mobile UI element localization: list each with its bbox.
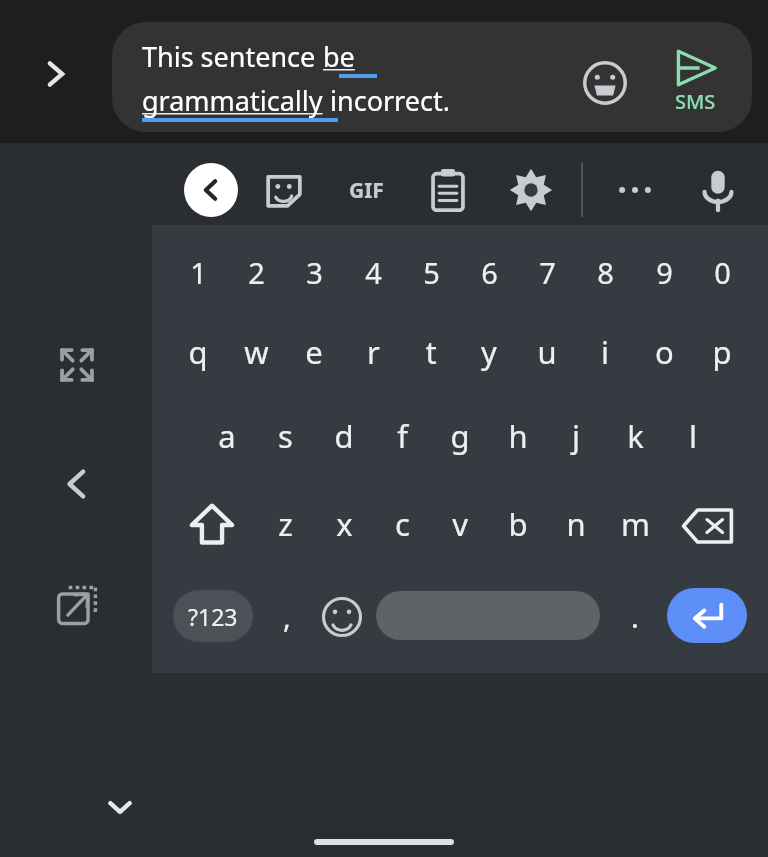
button[interactable]: Emoji xyxy=(582,60,628,106)
button[interactable]: 6 xyxy=(460,244,518,300)
button[interactable]: w xyxy=(227,324,285,380)
button[interactable]: More options xyxy=(612,170,658,210)
button[interactable]: j xyxy=(547,408,605,464)
button[interactable]: d xyxy=(315,408,373,464)
staticText: 3 xyxy=(306,253,323,292)
button[interactable]: y xyxy=(460,324,518,380)
staticText: 1 xyxy=(190,253,207,292)
staticText: SMS xyxy=(675,88,716,115)
staticText: 5 xyxy=(423,253,440,292)
button[interactable]: x xyxy=(315,496,373,552)
button[interactable]: i xyxy=(576,324,634,380)
button[interactable]: Close toolbar xyxy=(184,163,238,217)
button[interactable]: Emoji keyboard xyxy=(321,596,363,638)
button[interactable]: Next suggestion xyxy=(34,52,78,96)
staticText: h xyxy=(508,415,528,457)
staticText: 9 xyxy=(656,253,673,292)
staticText: 7 xyxy=(539,253,556,292)
staticText: i xyxy=(601,331,609,373)
staticText: ?123 xyxy=(188,601,238,632)
button[interactable]: b xyxy=(489,496,547,552)
button[interactable]: a xyxy=(198,408,256,464)
staticText: . xyxy=(631,597,639,636)
button[interactable]: u xyxy=(518,324,576,380)
button[interactable]: Back xyxy=(55,462,99,506)
staticText: b xyxy=(508,503,528,545)
button[interactable]: k xyxy=(606,408,664,464)
staticText: t xyxy=(425,331,437,373)
button[interactable]: , xyxy=(258,588,316,644)
staticText: m xyxy=(621,503,650,545)
button[interactable]: r xyxy=(344,324,402,380)
button[interactable]: Shift xyxy=(188,502,236,548)
button[interactable]: . xyxy=(606,588,664,644)
button[interactable]: ?123 xyxy=(173,590,253,642)
button[interactable]: 2 xyxy=(227,244,285,300)
staticText: c xyxy=(395,503,410,545)
button[interactable]: h xyxy=(489,408,547,464)
staticText: 4 xyxy=(365,253,382,292)
button[interactable]: GIF xyxy=(338,168,394,212)
button[interactable]: s xyxy=(256,408,314,464)
staticText: , xyxy=(283,597,291,636)
staticText: j xyxy=(572,415,580,457)
button[interactable]: 5 xyxy=(402,244,460,300)
button[interactable]: n xyxy=(547,496,605,552)
staticText: 8 xyxy=(597,253,614,292)
button[interactable]: Hide keyboard xyxy=(98,792,142,824)
button[interactable]: Voice input xyxy=(697,166,739,214)
staticText: 6 xyxy=(481,253,498,292)
button[interactable]: z xyxy=(256,496,314,552)
staticText: o xyxy=(655,331,674,373)
button[interactable]: 3 xyxy=(285,244,343,300)
button[interactable]: q xyxy=(169,324,227,380)
staticText: x xyxy=(336,503,353,545)
staticText: 0 xyxy=(714,253,731,292)
button[interactable]: v xyxy=(431,496,489,552)
staticText: z xyxy=(278,503,293,545)
staticText: f xyxy=(397,415,408,457)
staticText: s xyxy=(278,415,293,457)
staticText: GIF xyxy=(349,176,384,205)
button[interactable]: t xyxy=(402,324,460,380)
button[interactable]: 8 xyxy=(576,244,634,300)
button[interactable]: Backspace xyxy=(682,506,734,546)
staticText: l xyxy=(689,415,697,457)
staticText: grammatically xyxy=(142,82,323,119)
button[interactable]: Open in new window xyxy=(54,582,100,628)
button[interactable]: p xyxy=(693,324,751,380)
button[interactable]: l xyxy=(664,408,722,464)
button[interactable]: 9 xyxy=(635,244,693,300)
button[interactable]: Clipboard xyxy=(426,166,470,214)
button[interactable]: o xyxy=(635,324,693,380)
staticText: incorrect. xyxy=(323,82,450,119)
button[interactable]: m xyxy=(606,496,664,552)
staticText: v xyxy=(452,503,468,545)
staticText: p xyxy=(712,331,732,373)
staticText: n xyxy=(566,503,586,545)
button[interactable]: Enter xyxy=(667,588,747,643)
button[interactable]: This sentence xyxy=(112,22,752,132)
button[interactable]: Stickers xyxy=(262,168,306,212)
button[interactable]: 1 xyxy=(169,244,227,300)
button[interactable]: c xyxy=(373,496,431,552)
button[interactable]: g xyxy=(431,408,489,464)
staticText: g xyxy=(450,415,470,457)
button[interactable]: Send SMS xyxy=(658,48,732,120)
staticText: w xyxy=(244,331,269,373)
button[interactable]: 4 xyxy=(344,244,402,300)
button[interactable]: Settings xyxy=(508,167,554,213)
staticText: k xyxy=(627,415,644,457)
staticText: 2 xyxy=(248,253,265,292)
staticText: q xyxy=(188,331,208,373)
button[interactable]: Fullscreen xyxy=(55,343,99,387)
staticText: be xyxy=(323,38,355,75)
staticText: y xyxy=(481,331,497,373)
button[interactable]: Space xyxy=(376,591,600,640)
staticText: e xyxy=(305,331,323,373)
button[interactable]: 7 xyxy=(518,244,576,300)
button[interactable]: f xyxy=(373,408,431,464)
button[interactable]: 0 xyxy=(693,244,751,300)
staticText: a xyxy=(218,415,236,457)
button[interactable]: e xyxy=(285,324,343,380)
